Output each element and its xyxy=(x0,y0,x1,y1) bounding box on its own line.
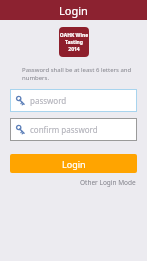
button[interactable]: confirm password xyxy=(10,118,137,141)
staticText: OAHK Wine Tasting 2014 xyxy=(59,32,89,53)
staticText: confirm password xyxy=(30,124,98,135)
button[interactable]: OAHK Wine Tasting 2014 logo xyxy=(59,27,89,57)
staticText: password xyxy=(30,95,67,106)
button[interactable]: Login xyxy=(10,154,137,173)
button[interactable]: Other Login Mode xyxy=(79,177,137,188)
staticText: Login xyxy=(59,3,88,18)
staticText: Other Login Mode xyxy=(80,178,136,187)
staticText: Login xyxy=(62,158,86,170)
staticText: Password shall be at least 6 letters and… xyxy=(22,66,137,82)
button[interactable]: password xyxy=(10,89,137,112)
